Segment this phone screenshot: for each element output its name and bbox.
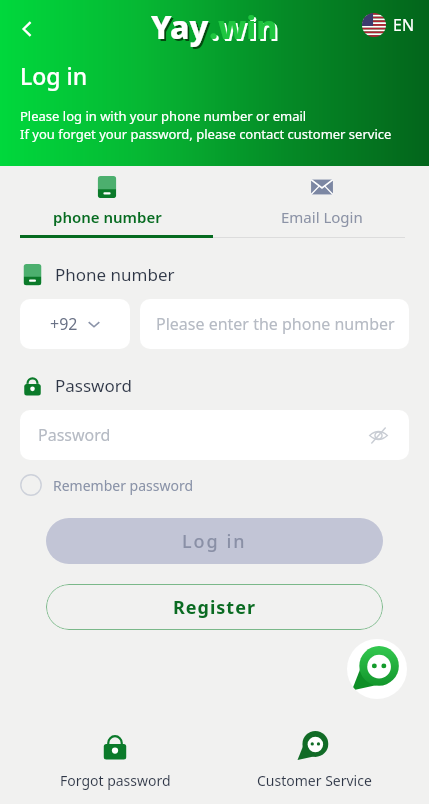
button[interactable]: +92 [20, 299, 130, 349]
button[interactable]: Show password [365, 422, 391, 448]
staticText: Email Login [281, 207, 363, 227]
button[interactable]: Register [46, 584, 383, 630]
staticText: phone number [53, 207, 162, 227]
button[interactable]: Back [6, 8, 48, 50]
button[interactable]: phone number [0, 166, 214, 238]
button[interactable]: Customer Service [229, 729, 399, 790]
staticText: Password [55, 374, 132, 397]
staticText: EN [393, 14, 415, 36]
button[interactable]: Remember password [20, 474, 194, 496]
staticText: Password [38, 424, 111, 446]
button[interactable]: Forgot password [30, 729, 200, 790]
staticText: Phone number [55, 263, 175, 286]
button[interactable]: Email Login [214, 166, 429, 238]
button[interactable]: Language English [362, 13, 415, 37]
staticText: Yay [153, 7, 211, 51]
button[interactable]: Log in [46, 518, 383, 564]
staticText: Remember password [53, 476, 194, 495]
staticText: Please log in with your phone number or … [20, 107, 307, 125]
button[interactable]: Chat with support [351, 643, 403, 695]
staticText: .win [209, 5, 278, 49]
staticText: Log in [20, 60, 88, 91]
staticText: Forgot password [60, 771, 171, 790]
button[interactable]: Yay [151, 5, 278, 49]
staticText: Log in [182, 529, 247, 554]
staticText: +92 [50, 313, 78, 335]
staticText: Customer Service [257, 771, 372, 790]
staticText: .win [211, 7, 280, 51]
staticText: Please enter the phone number [156, 313, 395, 335]
button[interactable]: Please enter the phone number [140, 299, 409, 349]
staticText: If you forget your password, please cont… [20, 125, 392, 143]
staticText: Yay [151, 5, 209, 49]
staticText: Register [173, 595, 256, 620]
button[interactable]: Password [20, 410, 409, 460]
